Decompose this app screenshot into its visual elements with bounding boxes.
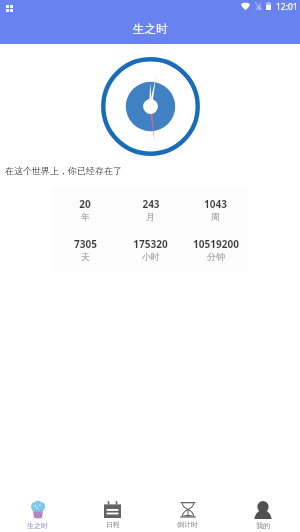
staticText: 在这个世界上，你已经存在了	[5, 165, 122, 176]
button[interactable]: 日程	[75, 487, 150, 529]
staticText: 10519200	[193, 237, 239, 251]
staticText: 倒计时	[177, 520, 198, 529]
staticText: 175320	[133, 237, 168, 251]
staticText: 20	[79, 197, 91, 211]
staticText: 小时	[142, 251, 160, 262]
staticText: 周	[211, 211, 220, 222]
staticText: 我的	[256, 521, 270, 530]
button[interactable]: 倒计时	[150, 487, 225, 529]
staticText: 年	[81, 211, 90, 222]
button[interactable]: 我的	[225, 487, 300, 530]
staticText: 7305	[74, 237, 97, 251]
staticText: 日程	[106, 520, 120, 529]
staticText: 243	[142, 197, 160, 211]
staticText: 分钟	[207, 251, 225, 262]
staticText: 生之时	[27, 521, 48, 530]
staticText: 12:01	[276, 1, 298, 13]
staticText: 月	[146, 211, 155, 222]
button[interactable]: 生之时	[0, 487, 75, 530]
staticText: 1043	[204, 197, 227, 211]
staticText: 生之时	[133, 22, 168, 36]
staticText: 天	[81, 251, 90, 262]
